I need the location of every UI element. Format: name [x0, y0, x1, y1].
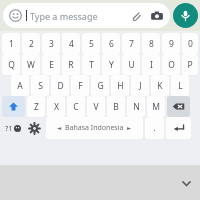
staticText: N [133, 101, 140, 113]
staticText: 7 [129, 38, 134, 50]
button[interactable]: 2 [22, 33, 40, 54]
button[interactable]: B [107, 96, 125, 117]
button[interactable]: Z [27, 96, 45, 117]
staticText: K [157, 80, 163, 92]
button[interactable]: 8 [142, 33, 160, 54]
button[interactable]: O [162, 54, 180, 75]
button[interactable]: X [47, 96, 65, 117]
staticText: H [117, 80, 124, 92]
staticText: Type a message [30, 10, 98, 22]
staticText: 8 [149, 38, 154, 50]
button[interactable]: Enter [166, 117, 191, 139]
button[interactable]: 7 [122, 33, 140, 54]
staticText: . [153, 122, 156, 134]
staticText: Q [8, 59, 15, 71]
button[interactable]: M [147, 96, 165, 117]
staticText: 1 [9, 38, 14, 50]
staticText: O [168, 59, 175, 71]
staticText: 0 [188, 38, 193, 50]
staticText: L [178, 80, 183, 92]
staticText: Z [34, 101, 39, 113]
staticText: J [139, 80, 142, 92]
button[interactable]: Y [102, 54, 120, 75]
button[interactable]: 5 [82, 33, 100, 54]
staticText: R [68, 59, 74, 71]
button[interactable]: D [51, 75, 69, 96]
button[interactable]: E [42, 54, 60, 75]
button[interactable]: U [122, 54, 140, 75]
button[interactable]: L [171, 75, 189, 96]
button[interactable]: . [145, 117, 164, 139]
button[interactable]: P [182, 54, 198, 75]
button[interactable]: Emoji [3, 3, 170, 28]
button[interactable]: V [87, 96, 105, 117]
button[interactable]: Attach [129, 9, 143, 23]
button[interactable]: 3 [42, 33, 60, 54]
button[interactable]: Voice message [173, 3, 198, 28]
button[interactable]: H [111, 75, 129, 96]
staticText: B [113, 101, 119, 113]
staticText: W [27, 59, 35, 71]
button[interactable]: R [62, 54, 80, 75]
button[interactable]: Hide keyboard [178, 175, 194, 191]
staticText: ◄ [57, 125, 62, 131]
button[interactable]: W [22, 54, 40, 75]
button[interactable]: Q [2, 54, 20, 75]
staticText: S [38, 80, 43, 92]
staticText: ?1 [5, 123, 13, 133]
staticText: U [128, 59, 135, 71]
staticText: 4 [69, 38, 74, 50]
button[interactable]: G [91, 75, 109, 96]
button[interactable]: N [127, 96, 145, 117]
button[interactable]: A [11, 75, 29, 96]
button[interactable]: K [151, 75, 169, 96]
button[interactable]: Emoji [9, 9, 22, 22]
staticText: 5 [89, 38, 94, 50]
staticText: F [78, 80, 83, 92]
staticText: A [17, 80, 23, 92]
button[interactable]: 6 [102, 33, 120, 54]
button[interactable]: 0 [182, 33, 198, 54]
staticText: D [57, 80, 64, 92]
staticText: X [54, 101, 59, 113]
button[interactable]: J [131, 75, 149, 96]
button[interactable]: T [82, 54, 100, 75]
button[interactable]: 9 [162, 33, 180, 54]
button[interactable]: C [67, 96, 85, 117]
button[interactable]: 1 [2, 33, 20, 54]
staticText: I [150, 59, 153, 71]
button[interactable]: Shift [2, 96, 25, 117]
staticText: T [89, 59, 94, 71]
button[interactable]: Settings [25, 117, 44, 139]
button[interactable]: Camera [150, 9, 164, 23]
button[interactable]: S [31, 75, 49, 96]
staticText: M [152, 101, 160, 113]
staticText: 3 [49, 38, 54, 50]
button[interactable]: Space [46, 117, 143, 139]
staticText: ► [127, 125, 132, 131]
button[interactable]: I [142, 54, 160, 75]
staticText: 2 [29, 38, 34, 50]
button[interactable]: Backspace [167, 96, 190, 117]
button[interactable]: Symbols [2, 117, 23, 139]
staticText: E [49, 59, 54, 71]
staticText: Y [109, 59, 114, 71]
staticText: P [187, 59, 193, 71]
staticText: V [93, 101, 99, 113]
staticText: C [73, 101, 79, 113]
staticText: 6 [109, 38, 114, 50]
staticText: 9 [169, 38, 174, 50]
staticText: G [97, 80, 104, 92]
button[interactable]: 4 [62, 33, 80, 54]
staticText: Bahasa Indonesia [65, 123, 124, 133]
button[interactable]: F [71, 75, 89, 96]
